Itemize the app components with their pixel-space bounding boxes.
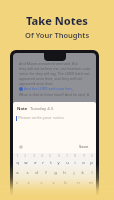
button[interactable]: e bbox=[34, 160, 37, 166]
staticText: And the LORD said unto him, bbox=[24, 86, 73, 91]
staticText: 7 bbox=[66, 154, 68, 158]
staticText: l bbox=[91, 170, 93, 176]
staticText: 3 bbox=[33, 154, 35, 158]
staticText: they will not believe me, nor hearken un… bbox=[19, 66, 91, 71]
button[interactable]: f bbox=[45, 170, 47, 176]
button[interactable]: 2 bbox=[24, 154, 26, 158]
button[interactable]: x bbox=[27, 180, 30, 186]
staticText: o bbox=[82, 160, 85, 166]
staticText: voice: for they will say, The LORD hath … bbox=[19, 71, 90, 76]
staticText: n bbox=[77, 180, 80, 186]
button[interactable]: a bbox=[16, 170, 19, 176]
staticText: e bbox=[34, 160, 37, 166]
staticText: appeared unto thee, and they will not he… bbox=[19, 76, 91, 81]
staticText: Note bbox=[17, 106, 28, 112]
staticText: a bbox=[16, 170, 19, 176]
staticText: 6 bbox=[58, 154, 60, 158]
staticText: 9 bbox=[83, 154, 85, 158]
staticText: w bbox=[24, 160, 28, 166]
staticText: Of Your Thoughts bbox=[25, 30, 90, 40]
button[interactable]: n bbox=[77, 180, 80, 186]
staticText: d bbox=[35, 170, 38, 176]
staticText: q bbox=[16, 160, 19, 166]
button[interactable]: t bbox=[50, 160, 52, 166]
button[interactable]: g bbox=[54, 170, 57, 176]
button[interactable]: b bbox=[64, 180, 67, 186]
staticText: u bbox=[66, 160, 69, 166]
staticText: Please write your notes bbox=[18, 115, 64, 121]
staticText: Take Notes bbox=[26, 13, 88, 28]
button[interactable]: 8 bbox=[74, 154, 76, 158]
staticText: y bbox=[57, 160, 60, 166]
staticText: 0 bbox=[91, 154, 93, 158]
staticText: k bbox=[81, 170, 84, 176]
staticText: j bbox=[73, 170, 75, 176]
staticText: b bbox=[64, 180, 67, 186]
staticText: appeared unto thee. bbox=[19, 81, 54, 86]
staticText: 4 bbox=[41, 154, 43, 158]
staticText: 5 bbox=[49, 154, 51, 158]
button[interactable]: i bbox=[74, 160, 76, 166]
button[interactable]: w bbox=[24, 160, 28, 166]
button[interactable]: 0 bbox=[91, 154, 93, 158]
button[interactable]: q bbox=[16, 160, 19, 166]
staticText: h bbox=[63, 170, 66, 176]
button[interactable]: 6 bbox=[58, 154, 60, 158]
staticText: c bbox=[40, 180, 43, 186]
staticText: z bbox=[16, 180, 18, 186]
button[interactable]: Save bbox=[77, 143, 91, 151]
button[interactable]: 3 bbox=[33, 154, 35, 158]
button[interactable]: 5 bbox=[49, 154, 51, 158]
staticText: Save bbox=[79, 144, 89, 150]
staticText: x bbox=[27, 180, 30, 186]
button[interactable]: d bbox=[35, 170, 38, 176]
staticText: m bbox=[89, 180, 93, 186]
staticText: 8 bbox=[74, 154, 76, 158]
staticText: p bbox=[90, 160, 93, 166]
staticText: s bbox=[26, 170, 29, 176]
button[interactable]: 9 bbox=[83, 154, 85, 158]
button[interactable]: v bbox=[52, 180, 55, 186]
staticText: 2 bbox=[24, 154, 26, 158]
button[interactable]: h bbox=[63, 170, 66, 176]
staticText: t bbox=[50, 160, 52, 166]
button[interactable]: y bbox=[57, 160, 60, 166]
staticText: Tuesday 4-5 bbox=[30, 106, 54, 112]
staticText: r bbox=[42, 160, 44, 166]
button[interactable]: 7 bbox=[66, 154, 68, 158]
button[interactable]: l bbox=[91, 170, 93, 176]
staticText: And Moses answered and said, But behold, bbox=[19, 61, 91, 66]
staticText: i bbox=[74, 160, 76, 166]
button[interactable]: c bbox=[40, 180, 43, 186]
button[interactable]: Add image bbox=[18, 144, 24, 150]
button[interactable]: 4 bbox=[41, 154, 43, 158]
button[interactable]: o bbox=[82, 160, 85, 166]
button[interactable]: u bbox=[66, 160, 69, 166]
staticText: v bbox=[52, 180, 55, 186]
staticText: What is that in thine hand? And he said,… bbox=[19, 92, 91, 97]
button[interactable]: s bbox=[26, 170, 29, 176]
button[interactable]: p bbox=[90, 160, 93, 166]
button[interactable]: r bbox=[42, 160, 44, 166]
button[interactable]: z bbox=[16, 180, 18, 186]
button[interactable]: m bbox=[89, 180, 93, 186]
staticText: g bbox=[54, 170, 57, 176]
button[interactable]: 1 bbox=[16, 154, 18, 158]
button[interactable]: k bbox=[81, 170, 84, 176]
staticText: 1 bbox=[16, 154, 18, 158]
button[interactable]: j bbox=[73, 170, 75, 176]
staticText: f bbox=[45, 170, 47, 176]
